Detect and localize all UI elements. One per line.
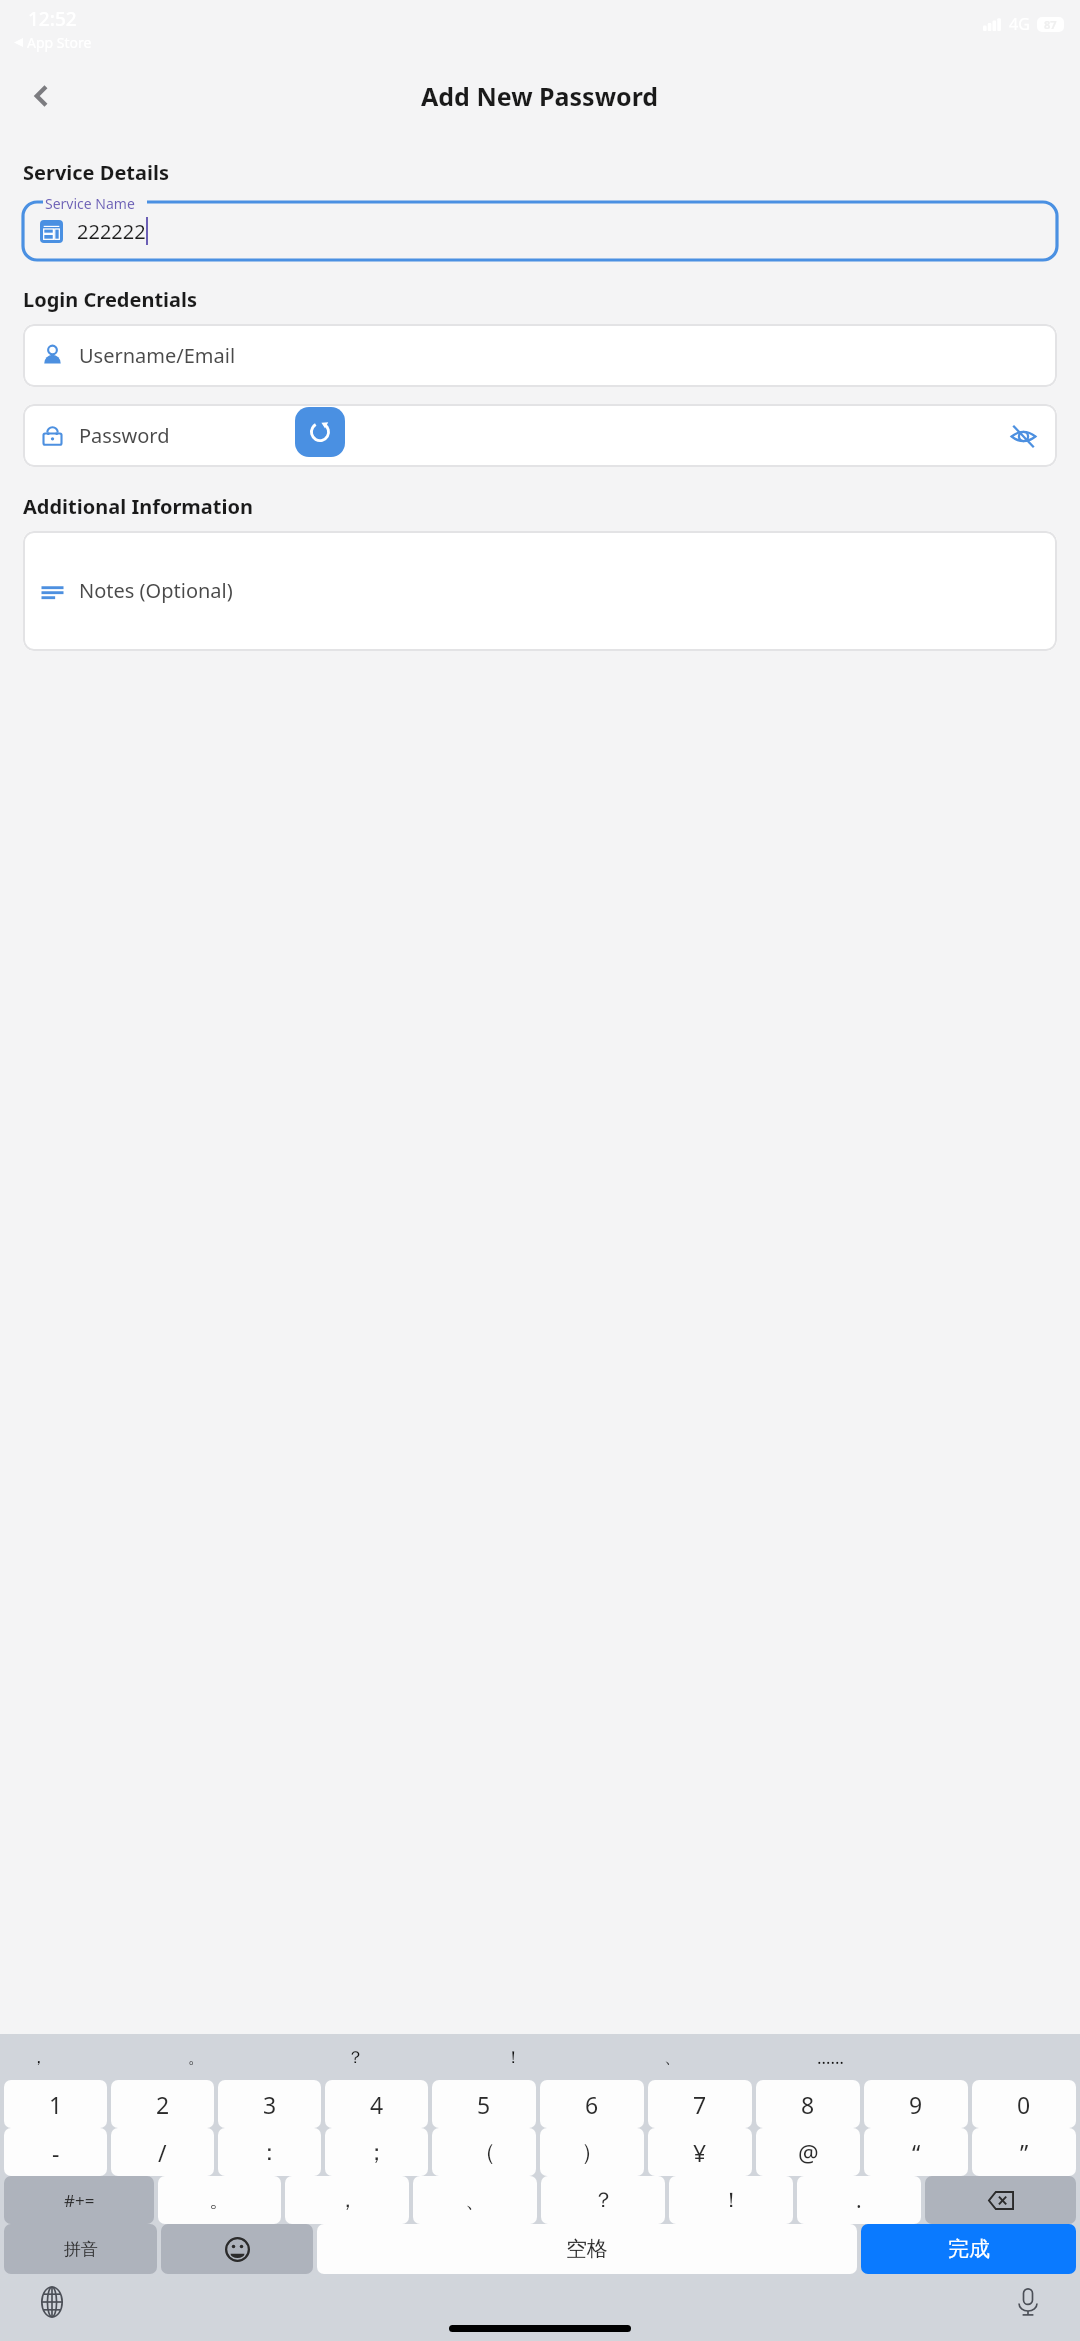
button[interactable]: ！ <box>669 2176 793 2224</box>
staticText: 7 <box>693 2089 707 2120</box>
staticText: 2 <box>156 2089 170 2120</box>
staticText: . <box>856 2186 862 2215</box>
button[interactable]: 9 <box>864 2080 968 2128</box>
staticText: 12:52 <box>28 6 77 32</box>
button[interactable]: Show password <box>1001 414 1045 458</box>
staticText: 、 <box>465 2187 486 2213</box>
button[interactable]: ¥ <box>648 2128 752 2176</box>
button[interactable]: ， <box>285 2176 409 2224</box>
staticText: 5 <box>477 2089 491 2120</box>
staticText: 空格 <box>566 2236 608 2262</box>
staticText: ： <box>258 2138 281 2167</box>
button[interactable]: @ <box>756 2128 860 2176</box>
staticText: Add New Password <box>421 79 659 113</box>
staticText: / <box>158 2137 167 2168</box>
staticText: 4G <box>1009 13 1030 35</box>
staticText: 。 <box>209 2187 230 2213</box>
button[interactable]: …… <box>810 2034 850 2080</box>
button[interactable]: Backspace <box>925 2176 1076 2224</box>
button[interactable]: 。 <box>158 2176 281 2224</box>
staticText: 8 <box>801 2089 815 2120</box>
staticText: 6 <box>585 2089 599 2120</box>
button[interactable]: 拼音 <box>4 2224 157 2274</box>
button[interactable]: 、 <box>413 2176 537 2224</box>
staticText: 4 <box>370 2089 384 2120</box>
staticText: ； <box>365 2138 388 2167</box>
staticText: 0 <box>1017 2089 1031 2120</box>
button[interactable]: Voice input <box>1006 2280 1050 2324</box>
button[interactable]: Password <box>23 404 1057 467</box>
button[interactable]: ？ <box>335 2034 375 2080</box>
button[interactable]: . <box>797 2176 921 2224</box>
staticText: Additional Information <box>23 493 253 520</box>
button[interactable]: Switch keyboard <box>30 2280 74 2324</box>
button[interactable]: 0 <box>972 2080 1076 2128</box>
button[interactable]: 空格 <box>317 2224 857 2274</box>
staticText: ！ <box>721 2187 742 2213</box>
button[interactable]: 。 <box>176 2034 216 2080</box>
button[interactable]: ， <box>18 2034 58 2080</box>
staticText: #+= <box>64 2189 95 2212</box>
button[interactable]: 7 <box>648 2080 752 2128</box>
staticText: 222222 <box>77 218 146 245</box>
staticText: 拼音 <box>64 2239 98 2260</box>
staticText: ） <box>581 2138 604 2167</box>
staticText: 1 <box>49 2089 63 2120</box>
staticText: Login Credentials <box>23 286 198 313</box>
button[interactable]: Username/Email <box>23 324 1057 387</box>
staticText: Service Name <box>45 194 135 213</box>
staticText: …… <box>817 2046 844 2069</box>
button[interactable]: - <box>4 2128 107 2176</box>
staticText: Password <box>79 422 170 449</box>
staticText: “ <box>912 2137 921 2168</box>
button[interactable]: （ <box>432 2128 536 2176</box>
staticText: ¥ <box>693 2137 707 2168</box>
staticText: Service Details <box>23 159 169 186</box>
button[interactable]: Back <box>20 74 64 118</box>
staticText: 完成 <box>948 2236 990 2262</box>
staticText: 9 <box>909 2089 923 2120</box>
button[interactable]: 5 <box>432 2080 536 2128</box>
button[interactable]: 8 <box>756 2080 860 2128</box>
button[interactable]: ： <box>218 2128 321 2176</box>
button[interactable]: #+= <box>4 2176 154 2224</box>
button[interactable]: 、 <box>652 2034 692 2080</box>
button[interactable]: 4 <box>325 2080 428 2128</box>
staticText: ？ <box>347 2047 364 2068</box>
button[interactable]: 1 <box>4 2080 107 2128</box>
staticText: 。 <box>188 2047 205 2068</box>
staticText: （ <box>473 2138 496 2167</box>
button[interactable]: / <box>111 2128 214 2176</box>
button[interactable]: Emoji <box>161 2224 313 2274</box>
button[interactable]: ？ <box>541 2176 665 2224</box>
staticText: 、 <box>664 2047 681 2068</box>
staticText: ” <box>1020 2137 1029 2168</box>
button[interactable]: ） <box>540 2128 644 2176</box>
button[interactable]: ” <box>972 2128 1076 2176</box>
button[interactable]: 2 <box>111 2080 214 2128</box>
staticText: Notes (Optional) <box>79 577 233 604</box>
staticText: App Store <box>27 33 92 52</box>
staticText: @ <box>798 2137 819 2168</box>
button[interactable]: 完成 <box>861 2224 1076 2274</box>
button[interactable]: “ <box>864 2128 968 2176</box>
button[interactable]: ； <box>325 2128 428 2176</box>
staticText: - <box>52 2137 60 2168</box>
staticText: ， <box>337 2187 358 2213</box>
button[interactable]: Notes (Optional) <box>23 531 1057 651</box>
button[interactable]: 6 <box>540 2080 644 2128</box>
button[interactable]: Generate password <box>295 407 345 457</box>
staticText: ！ <box>505 2047 522 2068</box>
staticText: Username/Email <box>79 342 236 369</box>
button[interactable]: 3 <box>218 2080 321 2128</box>
staticText: 87 <box>1044 17 1057 32</box>
staticText: ？ <box>593 2187 614 2213</box>
staticText: ， <box>30 2047 47 2068</box>
button[interactable]: ！ <box>493 2034 533 2080</box>
staticText: 3 <box>263 2089 277 2120</box>
